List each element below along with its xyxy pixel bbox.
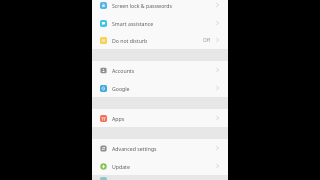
button[interactable]: Smart assistance (92, 14, 228, 32)
button[interactable]: Advanced settings (92, 139, 228, 157)
staticText: Accounts (112, 67, 135, 74)
staticText: Off (203, 37, 211, 44)
staticText: Smart assistance (112, 20, 154, 27)
button[interactable]: Update (92, 157, 228, 175)
button[interactable]: Apps (92, 109, 228, 127)
button[interactable]: Screen lock & passwords (92, 0, 228, 14)
staticText: Do not disturb (112, 37, 148, 44)
staticText: Update (112, 163, 130, 170)
staticText: Apps (112, 115, 125, 122)
staticText: Screen lock & passwords (112, 2, 173, 9)
staticText: Google (112, 85, 130, 92)
button[interactable]: Accounts (92, 61, 228, 79)
staticText: Advanced settings (112, 145, 157, 152)
button[interactable]: Google (92, 79, 228, 97)
button[interactable]: Do not disturb (92, 31, 228, 49)
